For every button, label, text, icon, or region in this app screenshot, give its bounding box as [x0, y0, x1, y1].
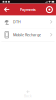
- button[interactable]: Back: [24, 90, 32, 100]
- staticText: Payments: [20, 7, 36, 12]
- button[interactable]: Help: [45, 4, 54, 16]
- button[interactable]: Back: [2, 4, 11, 16]
- staticText: Mobile Recharge: [13, 32, 41, 37]
- button[interactable]: DTH: [0, 16, 56, 28]
- staticText: Back: [24, 94, 32, 98]
- staticText: DTH: [13, 19, 21, 24]
- button[interactable]: Mobile Recharge: [0, 28, 56, 41]
